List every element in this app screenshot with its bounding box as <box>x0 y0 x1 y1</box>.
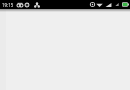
other: System status bar <box>0 0 130 9</box>
staticText: 19:15 <box>2 2 14 8</box>
